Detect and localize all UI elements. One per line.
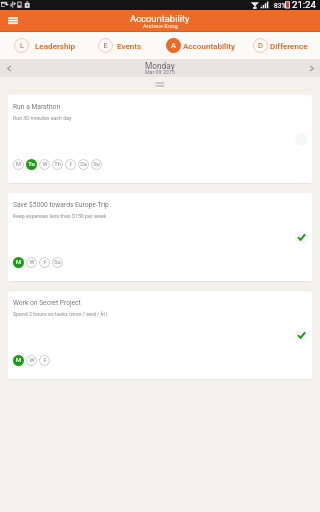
- staticText: L: [20, 41, 24, 50]
- staticText: 83%: [274, 2, 287, 10]
- staticText: Su: [54, 259, 61, 266]
- staticText: E: [103, 41, 108, 50]
- staticText: Accountability: [130, 13, 190, 24]
- staticText: D: [258, 41, 263, 50]
- button[interactable]: W: [26, 355, 37, 366]
- button[interactable]: M: [13, 257, 24, 268]
- staticText: Th: [54, 161, 61, 168]
- button[interactable]: M: [13, 355, 24, 366]
- staticText: F: [69, 161, 73, 168]
- button[interactable]: Mark complete: [295, 133, 308, 146]
- staticText: Mar 09 2015: [145, 69, 175, 75]
- staticText: Su: [93, 161, 100, 168]
- button[interactable]: L: [14, 32, 76, 59]
- button[interactable]: Completed: [295, 329, 308, 342]
- staticText: M: [16, 259, 21, 266]
- staticText: Accountability: [183, 41, 235, 50]
- button[interactable]: Open navigation menu: [3, 11, 23, 31]
- button[interactable]: A: [166, 32, 235, 59]
- staticText: Events: [117, 41, 142, 50]
- staticText: Spend 2 hours on tasks (mon / wed / fri): [13, 311, 108, 317]
- staticText: Sa: [80, 161, 87, 168]
- button[interactable]: F: [39, 355, 50, 366]
- button[interactable]: Tu: [26, 159, 37, 170]
- staticText: W: [29, 259, 35, 266]
- staticText: A: [171, 41, 176, 50]
- staticText: Keep expenses less than $150 per week: [13, 213, 107, 219]
- button[interactable]: F: [39, 257, 50, 268]
- button[interactable]: W: [39, 159, 50, 170]
- button[interactable]: Th: [52, 159, 63, 170]
- staticText: W: [29, 357, 35, 364]
- staticText: M: [16, 161, 21, 168]
- staticText: Tu: [28, 161, 35, 168]
- staticText: Save $5000 towards Europe Trip: [13, 201, 109, 209]
- staticText: M: [16, 357, 21, 364]
- button[interactable]: M: [13, 159, 24, 170]
- staticText: Run a Marathon: [13, 103, 61, 111]
- staticText: F: [43, 357, 47, 364]
- button[interactable]: F: [65, 159, 76, 170]
- button[interactable]: E: [98, 32, 142, 59]
- staticText: 21:24: [292, 0, 316, 9]
- staticText: W: [42, 161, 48, 168]
- button[interactable]: Work on Secret Project: [8, 291, 312, 380]
- staticText: Run 30 minutes each day: [13, 115, 72, 121]
- staticText: Leadership: [35, 41, 76, 50]
- button[interactable]: Previous day: [0, 60, 17, 77]
- staticText: Andrew Kong: [143, 23, 178, 30]
- button[interactable]: Next day: [303, 60, 320, 77]
- staticText: F: [43, 259, 47, 266]
- button[interactable]: Su: [52, 257, 63, 268]
- button[interactable]: Su: [91, 159, 102, 170]
- button[interactable]: Run a Marathon: [8, 95, 312, 184]
- staticText: Difference: [270, 41, 308, 50]
- button[interactable]: W: [26, 257, 37, 268]
- staticText: Monday: [145, 61, 175, 71]
- button[interactable]: Sa: [78, 159, 89, 170]
- button[interactable]: Completed: [295, 231, 308, 244]
- staticText: Work on Secret Project: [13, 299, 81, 307]
- button[interactable]: Save $5000 towards Europe Trip: [8, 193, 312, 282]
- button[interactable]: D: [253, 32, 308, 59]
